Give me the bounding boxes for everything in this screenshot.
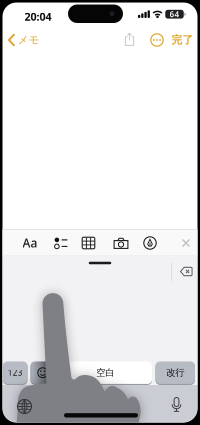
- staticText: 完了: [171, 33, 193, 46]
- button[interactable]: メモ: [5, 32, 43, 48]
- button[interactable]: [180, 267, 193, 276]
- staticText: 64: [169, 9, 179, 19]
- button[interactable]: [17, 399, 32, 414]
- button[interactable]: [82, 237, 95, 249]
- staticText: 123: [8, 367, 23, 378]
- button[interactable]: [124, 32, 135, 46]
- staticText: Aa: [22, 235, 37, 251]
- button[interactable]: [54, 237, 68, 249]
- button[interactable]: [143, 236, 156, 249]
- staticText: メモ: [17, 33, 39, 46]
- button[interactable]: [150, 33, 164, 47]
- button[interactable]: [181, 238, 191, 248]
- staticText: 空白: [96, 367, 114, 378]
- button[interactable]: Aa: [22, 235, 37, 251]
- staticText: 改行: [166, 367, 184, 378]
- button[interactable]: 123: [3, 361, 27, 385]
- button[interactable]: 空白: [58, 361, 152, 385]
- button[interactable]: [171, 397, 181, 413]
- button[interactable]: [30, 361, 55, 385]
- staticText: 20:04: [24, 9, 51, 24]
- button[interactable]: [113, 237, 128, 249]
- button[interactable]: 改行: [155, 361, 195, 385]
- button[interactable]: 完了: [171, 33, 193, 46]
